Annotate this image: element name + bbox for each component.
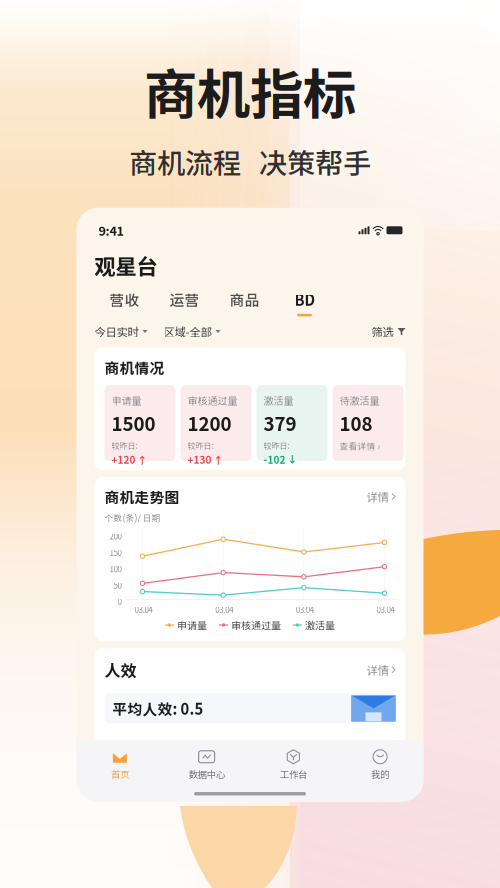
staticText: +130 ↑ <box>187 452 223 466</box>
staticText: 200 <box>109 530 121 542</box>
button[interactable]: 数据中心 <box>163 746 250 784</box>
button[interactable]: 审核通过量 <box>180 385 251 461</box>
staticText: 150 <box>109 547 121 558</box>
staticText: 个数(条)/ 日期 <box>104 511 160 524</box>
staticText: 查看详情 › <box>339 439 380 452</box>
staticText: 379 <box>263 409 296 436</box>
staticText: 商机情况 <box>104 357 164 378</box>
staticText: 审核通过量 <box>187 393 237 407</box>
staticText: 详情 <box>366 662 388 678</box>
staticText: 较昨日: <box>187 439 213 451</box>
button[interactable]: BD <box>274 289 334 316</box>
staticText: 108 <box>339 409 372 436</box>
staticText: 营收 <box>109 289 139 310</box>
staticText: 商机指标 <box>144 52 356 129</box>
button[interactable]: 详情 <box>366 488 395 505</box>
staticText: 筛选 <box>371 323 393 340</box>
button[interactable]: 今日实时 <box>94 323 147 340</box>
staticText: 1200 <box>187 409 231 436</box>
button[interactable]: 待激活量 <box>332 385 403 461</box>
staticText: 我的 <box>371 767 389 781</box>
button[interactable]: 工作台 <box>250 746 337 784</box>
staticText: 待激活量 <box>339 393 379 407</box>
staticText: 激活量 <box>263 393 293 407</box>
staticText: 商机走势图 <box>104 486 179 507</box>
staticText: 03.04 <box>376 604 394 615</box>
staticText: 商品 <box>229 289 259 310</box>
staticText: 激活量 <box>305 618 335 632</box>
button[interactable]: 我的 <box>337 746 424 784</box>
button[interactable]: 激活量 <box>256 385 327 461</box>
button[interactable]: 营收 <box>94 289 154 316</box>
staticText: 今日实时 <box>94 323 138 340</box>
staticText: 工作台 <box>280 767 307 781</box>
staticText: 首页 <box>111 767 129 781</box>
staticText: 100 <box>109 563 121 575</box>
staticText: 人效 <box>104 658 136 681</box>
staticText: 观星台 <box>94 250 157 281</box>
button[interactable]: 运营 <box>154 289 214 316</box>
staticText: 03.04 <box>215 604 233 615</box>
button[interactable]: 筛选 <box>371 323 405 340</box>
staticText: 较昨日: <box>111 439 137 451</box>
staticText: 1500 <box>111 409 155 436</box>
button[interactable]: 申请量 <box>104 385 175 461</box>
button[interactable]: 区域-全部 <box>163 323 220 340</box>
staticText: 商机流程 决策帮手 <box>129 141 371 182</box>
staticText: 申请量 <box>177 618 207 632</box>
staticText: 50 <box>113 579 121 591</box>
button[interactable]: 商品 <box>214 289 274 316</box>
staticText: 03.04 <box>296 604 314 615</box>
staticText: 较昨日: <box>263 439 289 451</box>
staticText: 03.04 <box>134 604 152 615</box>
staticText: 9:41 <box>98 221 123 239</box>
staticText: 平均人效: 0.5 <box>112 698 203 719</box>
staticText: 申请量 <box>111 393 141 407</box>
staticText: 详情 <box>366 488 388 505</box>
staticText: BD <box>294 289 314 310</box>
button[interactable]: 详情 <box>366 662 395 678</box>
button[interactable]: 首页 <box>76 746 163 784</box>
staticText: +120 ↑ <box>111 452 147 466</box>
staticText: 审核通过量 <box>231 618 281 632</box>
staticText: 0 <box>117 596 121 607</box>
staticText: 区域-全部 <box>163 323 211 340</box>
staticText: 运营 <box>169 289 199 310</box>
staticText: -102 ↓ <box>263 452 297 466</box>
staticText: 数据中心 <box>189 767 225 781</box>
